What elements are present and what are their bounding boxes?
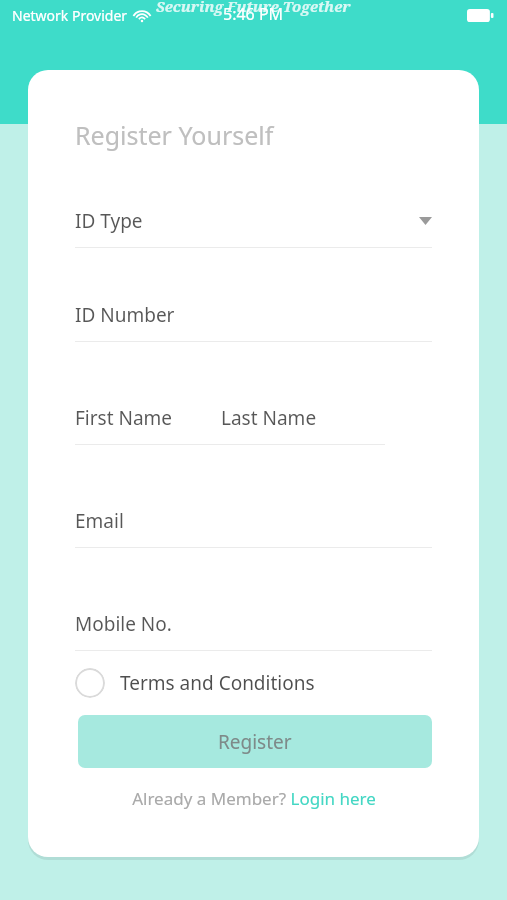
staticText: Terms and Conditions bbox=[120, 670, 315, 696]
button[interactable]: Mobile No. bbox=[75, 611, 432, 651]
staticText: Network Provider bbox=[12, 6, 128, 25]
staticText: 5:46 PM bbox=[223, 3, 284, 25]
button[interactable]: Already a Member? Login here bbox=[28, 783, 479, 813]
other: Open ID type dropdown bbox=[419, 217, 432, 225]
button[interactable]: Terms and Conditions bbox=[75, 666, 315, 700]
staticText: First Name bbox=[75, 405, 173, 431]
button[interactable]: First Name bbox=[75, 405, 238, 445]
staticText: Securing Future Together bbox=[156, 0, 351, 16]
staticText: Email bbox=[75, 508, 124, 534]
staticText: Already a Member? Login here bbox=[132, 787, 376, 810]
button[interactable]: Register bbox=[78, 715, 432, 768]
button[interactable]: Email bbox=[75, 508, 432, 548]
button[interactable]: ID Number bbox=[75, 302, 432, 342]
staticText: ID Type bbox=[75, 208, 143, 234]
staticText: Register bbox=[218, 729, 292, 755]
staticText: Register Yourself bbox=[75, 118, 274, 152]
staticText: Last Name bbox=[221, 405, 317, 431]
button[interactable]: Last Name bbox=[221, 405, 385, 445]
staticText: ID Number bbox=[75, 302, 175, 328]
staticText: Mobile No. bbox=[75, 611, 172, 637]
button[interactable]: ID Type bbox=[75, 208, 432, 248]
